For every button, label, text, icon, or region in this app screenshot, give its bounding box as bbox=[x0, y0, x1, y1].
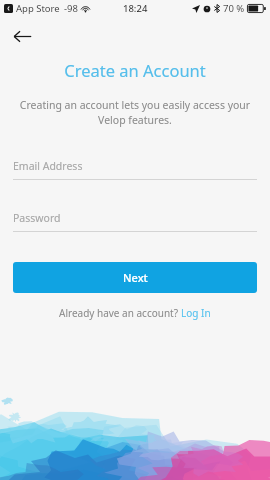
staticText: Log In bbox=[181, 306, 211, 320]
button[interactable]: Email Address bbox=[13, 159, 257, 180]
staticText: Create an Account bbox=[0, 59, 270, 81]
staticText: 18:24 bbox=[123, 2, 148, 15]
button[interactable]: Already have an account? bbox=[0, 306, 270, 320]
button[interactable]: Back bbox=[4, 18, 40, 54]
staticText: 70 % bbox=[223, 2, 245, 15]
staticText: Already have an account? bbox=[59, 306, 181, 320]
staticText: App Store bbox=[16, 2, 60, 15]
button[interactable]: Next bbox=[13, 262, 257, 293]
staticText: Password bbox=[13, 211, 61, 225]
staticText: -98 bbox=[64, 2, 78, 15]
button[interactable]: Password bbox=[13, 211, 257, 232]
staticText: Next bbox=[123, 270, 148, 285]
staticText: Email Address bbox=[13, 159, 83, 173]
staticText: Creating an account lets you easily acce… bbox=[13, 98, 257, 127]
